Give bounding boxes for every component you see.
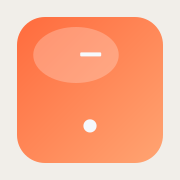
button[interactable]: Open (17, 17, 163, 163)
